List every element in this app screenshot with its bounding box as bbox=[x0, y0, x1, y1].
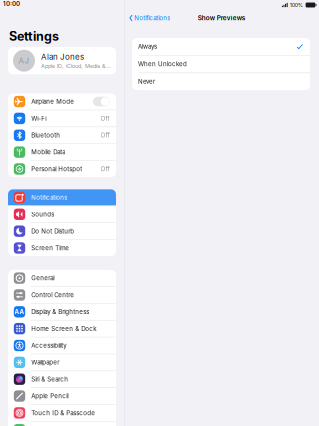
button[interactable]: Control Centre bbox=[8, 287, 116, 303]
staticText: Apple ID, iCloud, Media &… bbox=[41, 63, 111, 69]
button[interactable]: Home Screen & Dock bbox=[8, 320, 116, 337]
staticText: Do Not Disturb bbox=[31, 227, 74, 235]
staticText: When Unlocked bbox=[138, 60, 187, 68]
button[interactable]: Bluetooth bbox=[8, 127, 116, 143]
staticText: Show Previews bbox=[198, 14, 246, 22]
button[interactable]: Battery bbox=[8, 422, 116, 426]
staticText: General bbox=[31, 274, 54, 282]
staticText: Always bbox=[138, 43, 157, 50]
staticText: Airplane Mode bbox=[31, 98, 74, 105]
button[interactable]: Screen Time bbox=[8, 240, 116, 256]
button[interactable]: Airplane Mode bbox=[8, 93, 116, 110]
staticText: Notifications bbox=[134, 14, 170, 22]
staticText: Touch ID & Passcode bbox=[31, 409, 95, 417]
staticText: Home Screen & Dock bbox=[31, 325, 96, 332]
button[interactable]: Apple Pencil bbox=[8, 388, 116, 404]
staticText: Never bbox=[138, 78, 155, 85]
button[interactable]: Siri & Search bbox=[8, 371, 116, 387]
staticText: Off bbox=[100, 165, 109, 173]
staticText: Wallpaper bbox=[31, 359, 59, 366]
button[interactable]: General bbox=[8, 270, 116, 286]
button[interactable]: Always bbox=[132, 38, 310, 55]
button[interactable]: Notifications bbox=[127, 11, 173, 25]
staticText: Mobile Data bbox=[31, 148, 65, 156]
staticText: Bluetooth bbox=[31, 131, 60, 139]
staticText: Settings bbox=[9, 28, 59, 44]
staticText: Siri & Search bbox=[31, 375, 68, 383]
staticText: 10:00 bbox=[3, 0, 20, 7]
staticText: Display & Brightness bbox=[31, 308, 89, 315]
staticText: Sounds bbox=[31, 211, 54, 218]
staticText: Control Centre bbox=[31, 291, 74, 299]
staticText: Notifications bbox=[31, 194, 67, 201]
staticText: AJ bbox=[18, 56, 29, 65]
staticText: 100% bbox=[290, 2, 303, 8]
staticText: Off bbox=[100, 131, 109, 139]
staticText: Screen Time bbox=[31, 244, 69, 252]
button[interactable]: Accessibility bbox=[8, 337, 116, 354]
button[interactable]: Never bbox=[132, 73, 310, 90]
button[interactable]: Mobile Data bbox=[8, 144, 116, 160]
button[interactable]: Personal Hotspot bbox=[8, 161, 116, 177]
staticText: Wi-Fi bbox=[31, 115, 46, 122]
button[interactable]: AA bbox=[8, 304, 116, 320]
staticText: AA bbox=[14, 308, 24, 315]
button[interactable]: AJ bbox=[8, 47, 116, 74]
button[interactable]: Sounds bbox=[8, 206, 116, 222]
button[interactable]: Notifications bbox=[8, 189, 116, 206]
staticText: Accessibility bbox=[31, 342, 66, 349]
staticText: Alan Jones bbox=[41, 52, 84, 62]
button[interactable]: Do Not Disturb bbox=[8, 223, 116, 239]
button[interactable]: Touch ID & Passcode bbox=[8, 405, 116, 421]
button[interactable]: Wi-Fi bbox=[8, 110, 116, 126]
button[interactable]: When Unlocked bbox=[132, 55, 310, 72]
staticText: Apple Pencil bbox=[31, 392, 68, 400]
staticText: Off bbox=[100, 115, 109, 122]
button[interactable]: Wallpaper bbox=[8, 354, 116, 370]
staticText: Personal Hotspot bbox=[31, 165, 82, 173]
